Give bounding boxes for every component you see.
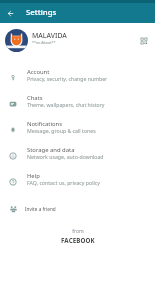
staticText: Settings	[26, 7, 57, 18]
staticText: from	[72, 228, 84, 235]
staticText: FACEBOOK	[61, 236, 95, 244]
staticText: Privacy, security, change number	[27, 75, 108, 82]
staticText: Invite a friend	[25, 206, 56, 212]
staticText: Network usage, auto-download	[27, 153, 104, 160]
button[interactable]: Account	[0, 65, 155, 91]
staticText: **no About**	[32, 40, 56, 45]
staticText: MALAVIDA	[32, 31, 67, 39]
button[interactable]: Back	[0, 3, 20, 23]
staticText: Help	[27, 172, 40, 180]
staticText: Account	[27, 68, 50, 76]
staticText: Storage and data	[27, 146, 75, 154]
staticText: Message, group & call tones	[27, 127, 96, 134]
staticText: Theme, wallpapers, chat history	[27, 101, 105, 108]
button[interactable]: Chats	[0, 91, 155, 117]
button[interactable]: Storage and data	[0, 143, 155, 169]
staticText: Notifications	[27, 120, 63, 128]
staticText: FAQ, contact us, privacy policy	[27, 179, 100, 186]
staticText: Chats	[27, 94, 43, 102]
button[interactable]: QR code	[138, 34, 150, 46]
button[interactable]: Invite a friend	[0, 195, 155, 221]
button[interactable]: MALAVIDA	[0, 23, 155, 65]
button[interactable]: Notifications	[0, 117, 155, 143]
button[interactable]: Help	[0, 169, 155, 195]
